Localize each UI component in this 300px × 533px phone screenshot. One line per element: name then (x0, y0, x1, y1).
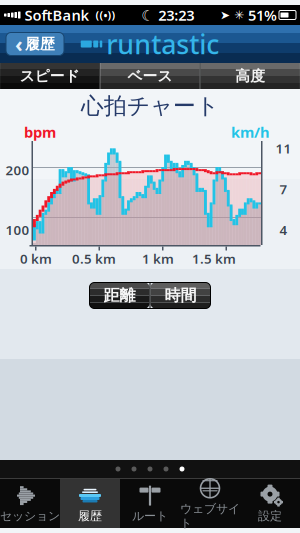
staticText: 1.5 km (192, 250, 236, 267)
staticText: 0.5 km (72, 250, 116, 267)
button[interactable]: ルート (120, 479, 180, 528)
button[interactable]: ‹ (6, 32, 64, 55)
staticText: ルート (132, 509, 168, 523)
staticText: bpm (24, 122, 56, 142)
staticText: 時間 (164, 286, 196, 305)
staticText: 高度 (235, 67, 265, 85)
staticText: 履歴 (25, 35, 55, 53)
staticText: 設定 (258, 509, 282, 523)
staticText: 4 (279, 221, 287, 239)
staticText: セッション (0, 509, 60, 523)
button[interactable]: ウェブサイト (180, 479, 240, 528)
staticText: 200 (5, 161, 29, 179)
staticText: 1 km (142, 250, 174, 267)
button[interactable]: 時間 (150, 282, 210, 308)
staticText: ‹ (15, 30, 23, 58)
button[interactable]: 高度 (201, 63, 300, 89)
staticText: ウェブサイト (180, 501, 240, 531)
staticText: runtastic (106, 26, 219, 62)
staticText: km/h (231, 122, 270, 142)
staticText: 51% (244, 5, 277, 25)
staticText: 心拍チャート (81, 92, 219, 120)
button[interactable]: セッション (0, 479, 60, 528)
button[interactable]: 履歴 (60, 479, 120, 528)
staticText: スピード (20, 67, 80, 85)
button[interactable]: 設定 (240, 479, 300, 528)
staticText: ベース (127, 67, 172, 85)
staticText: ((•)) (89, 8, 115, 22)
staticText: ☾ 23:23 (141, 5, 194, 25)
button[interactable]: ベース (100, 63, 200, 89)
staticText: ➤ ✳ (220, 8, 244, 22)
button[interactable]: スピード (0, 63, 99, 89)
staticText: 7 (279, 180, 287, 198)
staticText: 11 (275, 139, 291, 157)
staticText: 0 km (20, 250, 52, 267)
staticText: SoftBank (20, 5, 89, 25)
button[interactable]: 距離 (89, 282, 149, 308)
staticText: 100 (5, 221, 29, 239)
staticText: 履歴 (78, 509, 102, 523)
staticText: 距離 (103, 286, 135, 305)
